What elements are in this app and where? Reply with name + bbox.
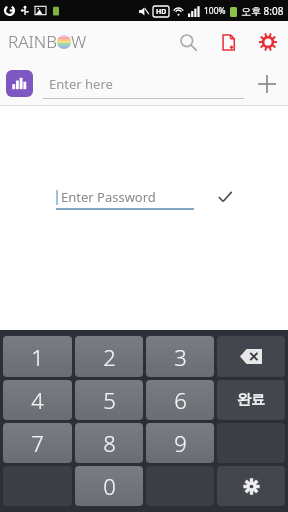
button[interactable]: Chart — [6, 70, 33, 97]
staticText: Enter Password — [61, 188, 156, 206]
staticText: 6 — [174, 385, 187, 415]
button[interactable]: 0 — [75, 466, 143, 506]
button[interactable]: Enter Password — [56, 184, 194, 210]
staticText: Enter here — [49, 75, 113, 93]
button[interactable]: Search — [174, 28, 202, 56]
staticText: 7 — [31, 428, 44, 458]
staticText: 3 — [174, 342, 187, 372]
button[interactable]: Settings — [254, 28, 282, 56]
button[interactable]: 1 — [3, 336, 72, 377]
staticText: 9 — [174, 428, 187, 458]
button[interactable]: 4 — [3, 380, 72, 420]
staticText: 1 — [31, 342, 44, 372]
button[interactable]: 6 — [146, 380, 214, 420]
staticText: 0 — [103, 471, 116, 501]
button[interactable]: Add — [252, 69, 282, 99]
staticText: 오후 8:08 — [241, 4, 284, 18]
button[interactable]: New document — [214, 28, 242, 56]
button[interactable]: 9 — [146, 423, 214, 463]
staticText: 완료 — [237, 391, 265, 409]
button[interactable]: 2 — [75, 336, 143, 377]
button[interactable]: 완료 — [217, 380, 285, 420]
staticText: W — [71, 30, 87, 53]
staticText: HD — [156, 7, 167, 17]
button[interactable]: 7 — [3, 423, 72, 463]
button[interactable]: 8 — [75, 423, 143, 463]
button[interactable]: Backspace — [217, 336, 285, 377]
button[interactable]: Keyboard settings — [217, 466, 285, 506]
staticText: 4 — [31, 385, 44, 415]
button[interactable]: Confirm — [212, 184, 238, 210]
staticText: 2 — [103, 342, 116, 372]
button[interactable]: 5 — [75, 380, 143, 420]
staticText: 5 — [103, 385, 116, 415]
staticText: 100% — [204, 5, 226, 17]
button[interactable]: Enter here — [43, 69, 244, 99]
staticText: 8 — [103, 428, 116, 458]
button[interactable]: 3 — [146, 336, 214, 377]
staticText: RAINB — [8, 30, 57, 53]
